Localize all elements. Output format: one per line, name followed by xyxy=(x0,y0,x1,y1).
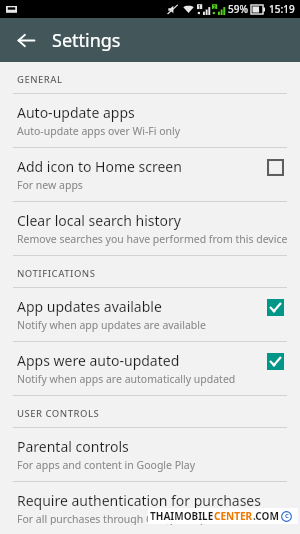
staticText: Remove searches you have performed from … xyxy=(17,232,288,246)
staticText: Notify when apps are automatically updat… xyxy=(17,372,236,386)
button[interactable]: Require authentication for purchases xyxy=(0,482,300,534)
staticText: USER CONTROLS xyxy=(17,407,100,420)
button[interactable]: Back xyxy=(9,23,43,57)
staticText: GENERAL xyxy=(17,73,63,86)
button[interactable]: Auto-update apps xyxy=(0,94,300,148)
button[interactable]: Parental controls xyxy=(0,428,300,482)
button[interactable]: Clear local search history xyxy=(0,202,300,256)
staticText: .COM xyxy=(253,509,279,523)
staticText: 2 xyxy=(213,4,216,11)
staticText: 1 xyxy=(198,4,201,11)
staticText: Auto-update apps over Wi-Fi only xyxy=(17,124,181,138)
staticText: Apps were auto-updated xyxy=(17,351,180,370)
staticText: Require authentication for purchases xyxy=(17,491,261,510)
staticText: For all purchases through Google Play on… xyxy=(17,512,275,525)
staticText: 59% xyxy=(228,2,248,16)
staticText: C xyxy=(285,512,289,520)
staticText: Add icon to Home screen xyxy=(17,157,182,176)
staticText: Settings xyxy=(52,28,121,53)
staticText: For new apps xyxy=(17,178,83,192)
staticText: CENTER xyxy=(214,509,253,523)
staticText: Parental controls xyxy=(17,437,129,456)
button[interactable]: Add icon to Home screen xyxy=(0,148,300,202)
staticText: NOTIFICATIONS xyxy=(17,267,96,280)
staticText: Auto-update apps xyxy=(17,103,135,122)
staticText: THAIMOBILE xyxy=(150,509,214,523)
staticText: Clear local search history xyxy=(17,211,181,230)
button[interactable]: App updates available xyxy=(0,288,300,342)
staticText: 15:19 xyxy=(269,2,295,16)
staticText: App updates available xyxy=(17,297,162,316)
staticText: For apps and content in Google Play xyxy=(17,458,196,472)
staticText: Notify when app updates are available xyxy=(17,318,206,332)
button[interactable]: Apps were auto-updated xyxy=(0,342,300,396)
